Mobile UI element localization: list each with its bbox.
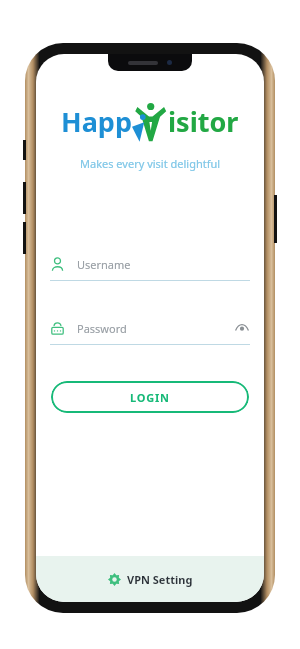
- button[interactable]: Username: [50, 253, 250, 281]
- button[interactable]: Show password: [234, 320, 250, 336]
- staticText: Username: [77, 257, 131, 272]
- staticText: Password: [77, 321, 127, 336]
- button[interactable]: VPN Setting: [36, 556, 264, 602]
- staticText: isitor: [168, 103, 239, 140]
- staticText: Makes every visit delightful: [80, 156, 221, 171]
- button[interactable]: Password: [50, 317, 250, 345]
- staticText: VPN Setting: [127, 572, 193, 587]
- button[interactable]: LOGIN: [51, 381, 249, 413]
- staticText: Happ: [61, 103, 132, 140]
- staticText: LOGIN: [130, 390, 170, 405]
